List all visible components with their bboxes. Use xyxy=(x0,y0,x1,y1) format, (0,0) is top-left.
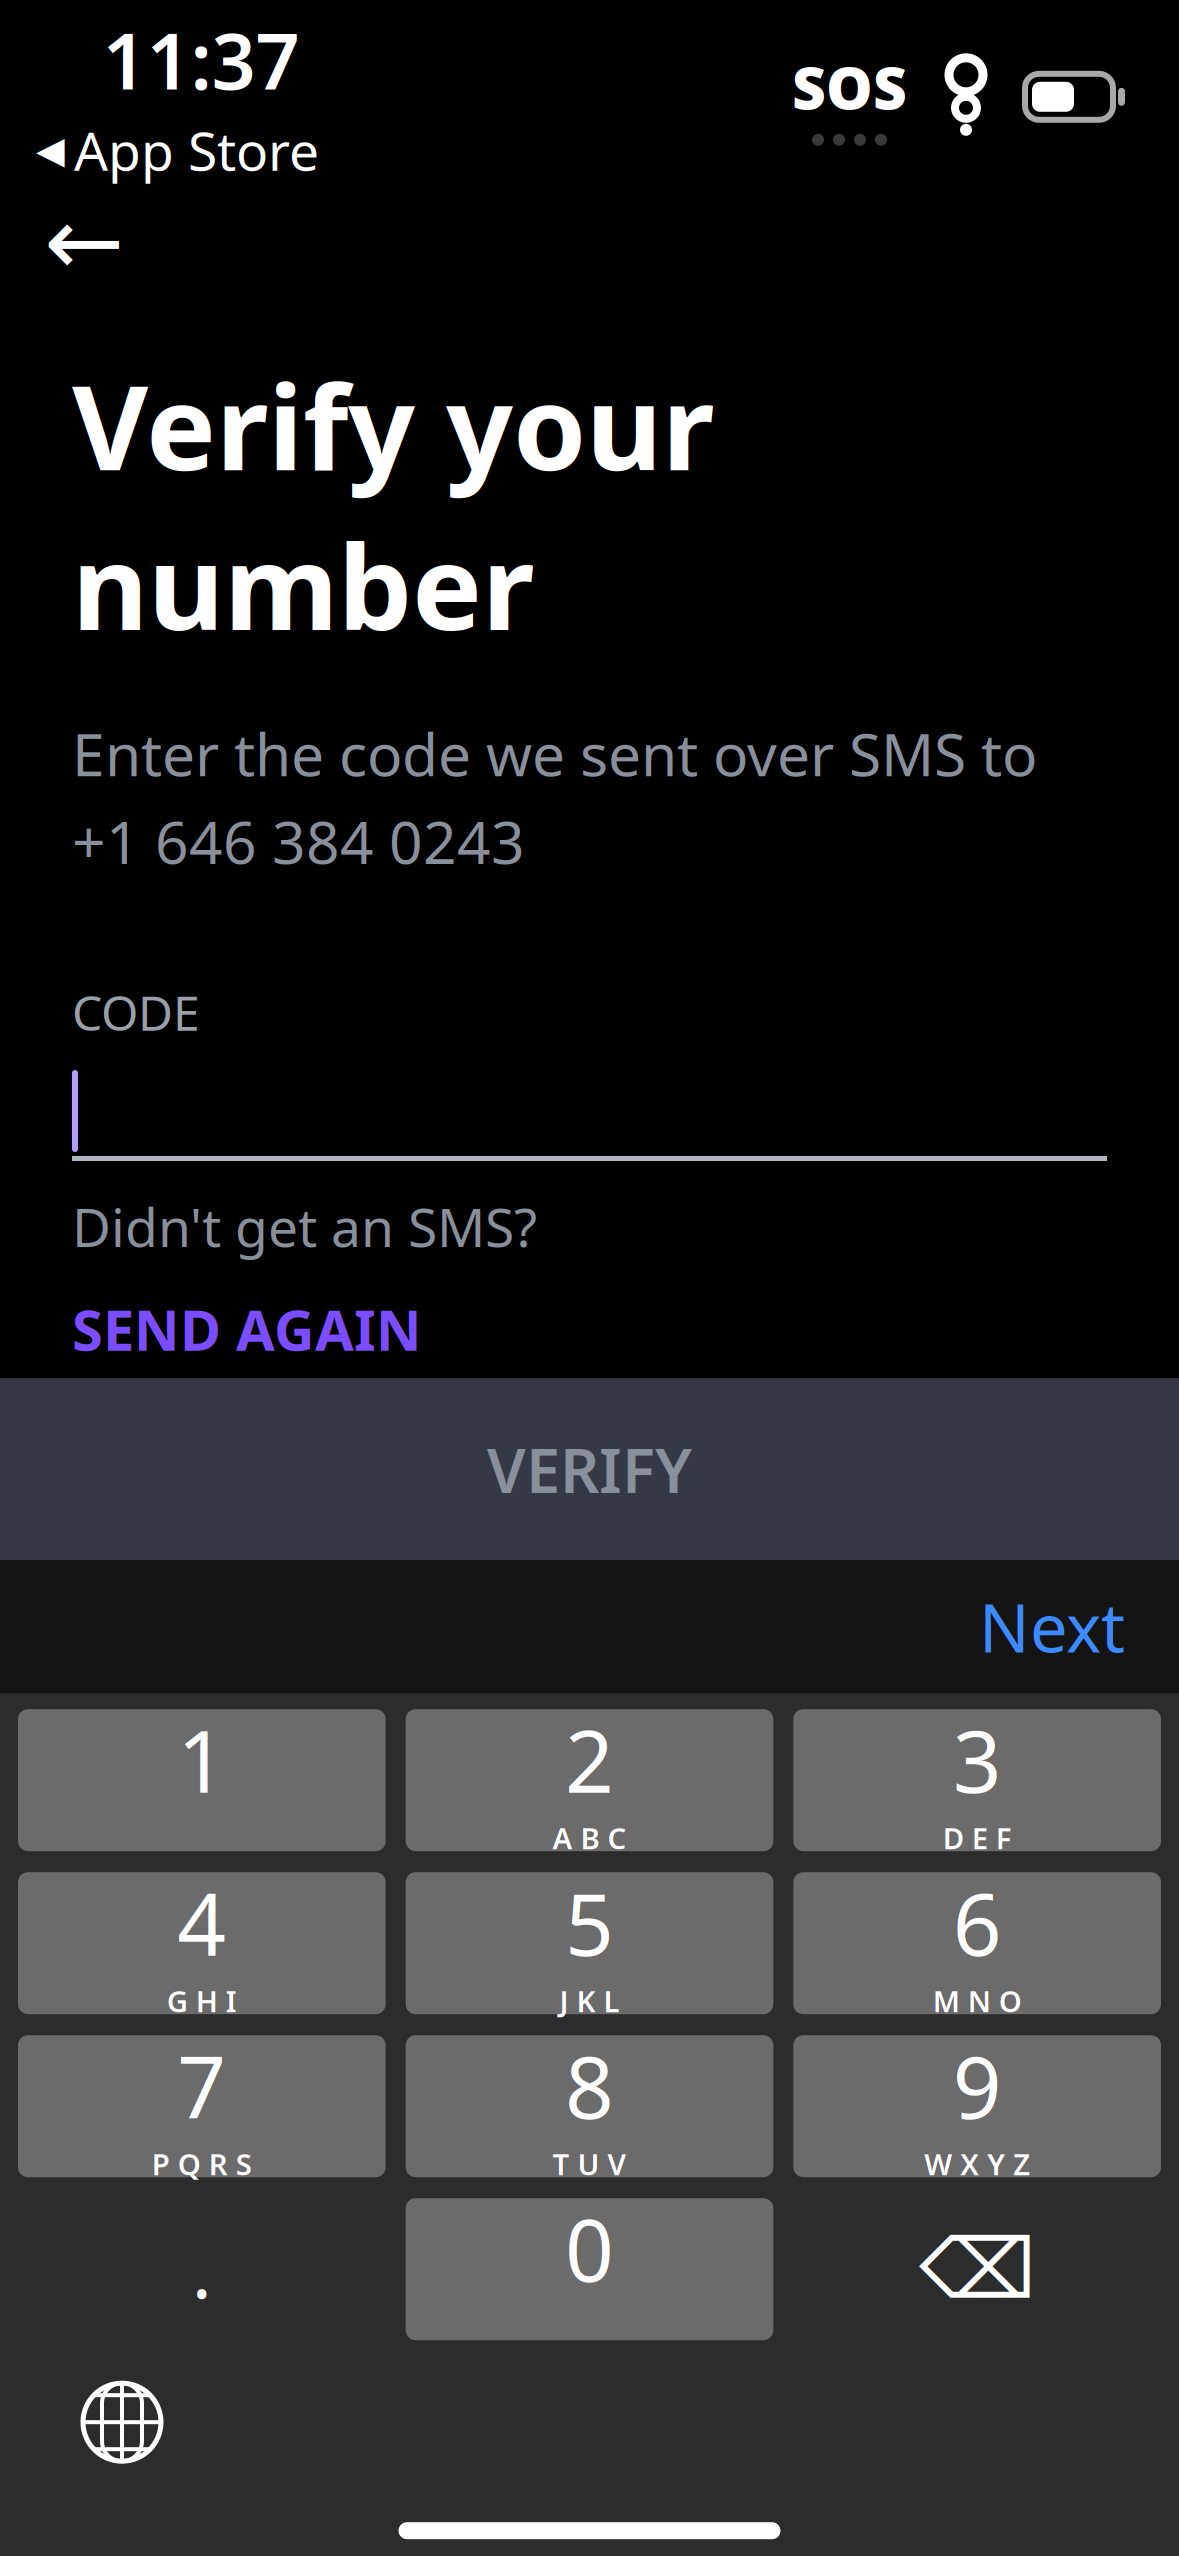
button[interactable]: 2 xyxy=(406,1709,773,1851)
staticText: SOS xyxy=(792,48,907,126)
button[interactable]: Next keyboard xyxy=(62,2362,182,2482)
staticText: 9 xyxy=(953,2029,1002,2142)
staticText: ◀ xyxy=(36,129,65,171)
staticText: +1 646 384 0243 xyxy=(72,802,525,880)
staticText: . xyxy=(192,2220,212,2319)
staticText: ← xyxy=(44,187,124,296)
staticText: Next xyxy=(979,1582,1125,1671)
staticText: VERIFY xyxy=(487,1428,692,1510)
button[interactable]: 6 xyxy=(793,1872,1161,2014)
staticText: Didn't get an SMS? xyxy=(72,1191,537,1262)
staticText: D E F xyxy=(943,1818,1012,1857)
staticText xyxy=(585,2307,593,2346)
staticText: 3 xyxy=(953,1703,1002,1816)
staticText: 4 xyxy=(177,1866,226,1979)
staticText xyxy=(198,1818,206,1857)
button[interactable]: Back xyxy=(24,182,144,302)
staticText: T U V xyxy=(552,2144,626,2183)
staticText: number xyxy=(72,507,534,662)
staticText: J K L xyxy=(559,1981,619,2020)
button[interactable]: Next xyxy=(951,1566,1153,1687)
staticText: Verify your xyxy=(72,347,714,503)
staticText: App Store xyxy=(74,115,319,185)
staticText: Enter the code we sent over SMS to xyxy=(72,714,1037,792)
button[interactable]: 4 xyxy=(18,1872,386,2014)
staticText: 1 xyxy=(177,1703,226,1816)
button[interactable]: Delete xyxy=(793,2198,1161,2340)
staticText: 0 xyxy=(565,2192,614,2305)
staticText: G H I xyxy=(167,1981,237,2020)
staticText: 2 xyxy=(565,1703,614,1816)
staticText: W X Y Z xyxy=(924,2144,1030,2183)
staticText: CODE xyxy=(72,980,200,1044)
staticText: P Q R S xyxy=(152,2144,252,2183)
staticText: A B C xyxy=(552,1818,626,1857)
button[interactable]: 0 xyxy=(406,2198,773,2340)
staticText: ⌫ xyxy=(919,2222,1036,2316)
button[interactable]: 1 xyxy=(18,1709,386,1851)
button[interactable]: 3 xyxy=(793,1709,1161,1851)
button[interactable]: 7 xyxy=(18,2035,386,2177)
staticText: 7 xyxy=(177,2029,226,2142)
staticText: M N O xyxy=(933,1981,1022,2020)
button[interactable]: Period xyxy=(18,2198,386,2340)
button[interactable]: VERIFY xyxy=(0,1378,1179,1560)
button[interactable]: 5 xyxy=(406,1872,773,2014)
staticText: 6 xyxy=(953,1866,1002,1979)
button[interactable]: SEND AGAIN xyxy=(72,1280,422,1378)
button[interactable]: 8 xyxy=(406,2035,773,2177)
staticText: 5 xyxy=(565,1866,614,1979)
staticText: 8 xyxy=(565,2029,614,2142)
button[interactable]: 9 xyxy=(793,2035,1161,2177)
staticText: 11:37 xyxy=(102,8,299,111)
staticText: SEND AGAIN xyxy=(72,1292,422,1366)
